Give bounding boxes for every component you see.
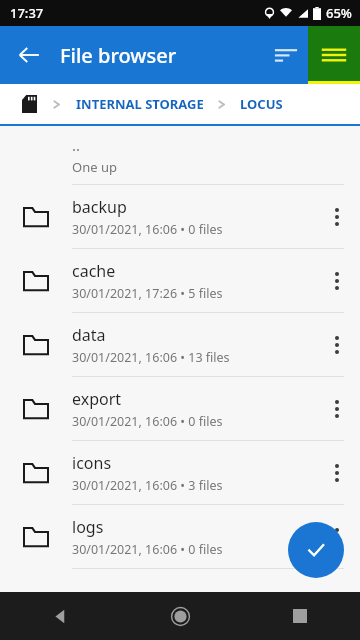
staticText: One up xyxy=(72,158,117,176)
staticText: 30/01/2021, 16:06 • 13 files xyxy=(72,349,230,366)
button[interactable]: Recent apps xyxy=(240,592,360,640)
button[interactable]: Back xyxy=(0,592,120,640)
button[interactable]: export xyxy=(0,377,360,441)
button[interactable]: data xyxy=(0,313,360,377)
staticText: logs xyxy=(72,516,104,538)
staticText: 30/01/2021, 16:06 • 0 files xyxy=(72,413,223,430)
button[interactable]: icons xyxy=(0,441,360,505)
button[interactable]: Back xyxy=(8,34,50,76)
staticText: .. xyxy=(72,135,81,155)
staticText: cache xyxy=(72,260,116,282)
staticText: data xyxy=(72,324,106,346)
button[interactable]: Sort xyxy=(264,33,308,77)
button[interactable]: More options for data xyxy=(314,313,360,376)
button[interactable]: logs xyxy=(0,505,360,569)
staticText: 30/01/2021, 16:06 • 0 files xyxy=(72,221,223,238)
staticText: 30/01/2021, 16:06 • 3 files xyxy=(72,477,223,494)
staticText: 30/01/2021, 17:26 • 5 files xyxy=(72,285,223,302)
staticText: backup xyxy=(72,196,127,218)
staticText: 30/01/2021, 16:06 • 0 files xyxy=(72,541,223,558)
staticText: 17:37 xyxy=(10,4,44,22)
button[interactable]: Menu xyxy=(308,26,360,84)
button[interactable]: More options for export xyxy=(314,377,360,440)
button[interactable]: .. xyxy=(0,126,360,185)
button[interactable]: LOCUS xyxy=(240,95,283,113)
button[interactable]: More options for cache xyxy=(314,249,360,312)
button[interactable]: Confirm selection xyxy=(288,522,344,578)
button[interactable]: More options for backup xyxy=(314,185,360,248)
staticText: 65% xyxy=(326,4,352,22)
button[interactable]: cache xyxy=(0,249,360,313)
staticText: File browser xyxy=(60,42,177,69)
staticText: export xyxy=(72,388,122,410)
button[interactable]: Home xyxy=(120,592,240,640)
button[interactable]: backup xyxy=(0,185,360,249)
button[interactable]: INTERNAL STORAGE xyxy=(76,95,204,113)
staticText: icons xyxy=(72,452,112,474)
button[interactable]: More options for logs xyxy=(314,505,360,568)
button[interactable]: More options for icons xyxy=(314,441,360,504)
